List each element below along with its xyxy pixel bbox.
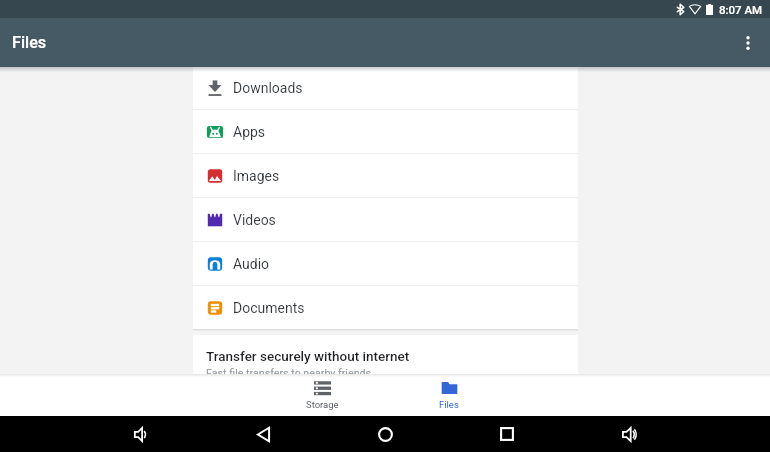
staticText: Files [12,33,47,52]
button[interactable]: Files [409,374,489,416]
staticText: Files [439,399,459,410]
button[interactable]: Volume up [601,416,657,452]
staticText: Downloads [233,80,303,96]
staticText: Videos [233,212,276,228]
button[interactable]: Documents [193,286,578,329]
staticText: Apps [233,124,266,140]
button[interactable]: Videos [193,198,578,241]
button[interactable]: Audio [193,242,578,285]
button[interactable]: Home [357,416,413,452]
staticText: 8:07 AM [719,3,763,16]
button[interactable]: Storage [282,374,362,416]
staticText: Images [233,168,280,184]
button[interactable]: More options [726,21,770,65]
staticText: Storage [306,399,339,410]
button[interactable]: Apps [193,110,578,153]
staticText: Audio [233,256,270,272]
button[interactable]: Images [193,154,578,197]
button[interactable]: Downloads [193,67,578,109]
staticText: Transfer securely without internet [206,348,410,364]
button[interactable]: Transfer securely without internet [193,335,578,374]
button[interactable]: Recents [479,416,535,452]
staticText: Fast file transfers to nearby friends [206,367,372,374]
button[interactable]: Volume down [113,416,169,452]
button[interactable]: Back [235,416,291,452]
staticText: Documents [233,300,305,316]
